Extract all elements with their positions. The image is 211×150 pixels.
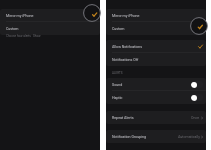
button[interactable]: Custom: [0, 22, 100, 35]
staticText: Sound: [112, 83, 123, 87]
button[interactable]: Toggle: [191, 94, 203, 101]
staticText: ALERTS: [112, 71, 123, 75]
staticText: Mirror my iPhone: [112, 14, 140, 18]
staticText: Notifications Off: [112, 58, 139, 62]
staticText: Automatically: [178, 135, 200, 139]
other: Selected option: [83, 4, 101, 22]
staticText: Notification Grouping: [112, 135, 147, 139]
staticText: Custom: [112, 27, 125, 31]
button[interactable]: Repeat Alerts: [106, 111, 206, 124]
button[interactable]: Mirror my iPhone: [106, 9, 206, 22]
button[interactable]: Custom: [106, 22, 206, 35]
staticText: Allow Notifications: [112, 45, 143, 49]
staticText: Custom: [6, 27, 19, 31]
button[interactable]: Sound: [106, 78, 206, 91]
other: Selected option: [190, 17, 208, 35]
button[interactable]: Notification Grouping: [106, 130, 206, 143]
staticText: Repeat Alerts: [112, 116, 134, 120]
staticText: Mirror my iPhone: [6, 14, 34, 18]
button[interactable]: Mirror my iPhone: [0, 9, 100, 22]
staticText: Choose how alerts Show: [6, 34, 41, 38]
button[interactable]: Notifications Off: [106, 53, 206, 66]
button[interactable]: Haptic: [106, 91, 206, 104]
button[interactable]: Toggle: [191, 81, 203, 88]
staticText: Once: [191, 116, 200, 120]
button[interactable]: Allow Notifications: [106, 40, 206, 53]
staticText: Haptic: [112, 96, 123, 100]
